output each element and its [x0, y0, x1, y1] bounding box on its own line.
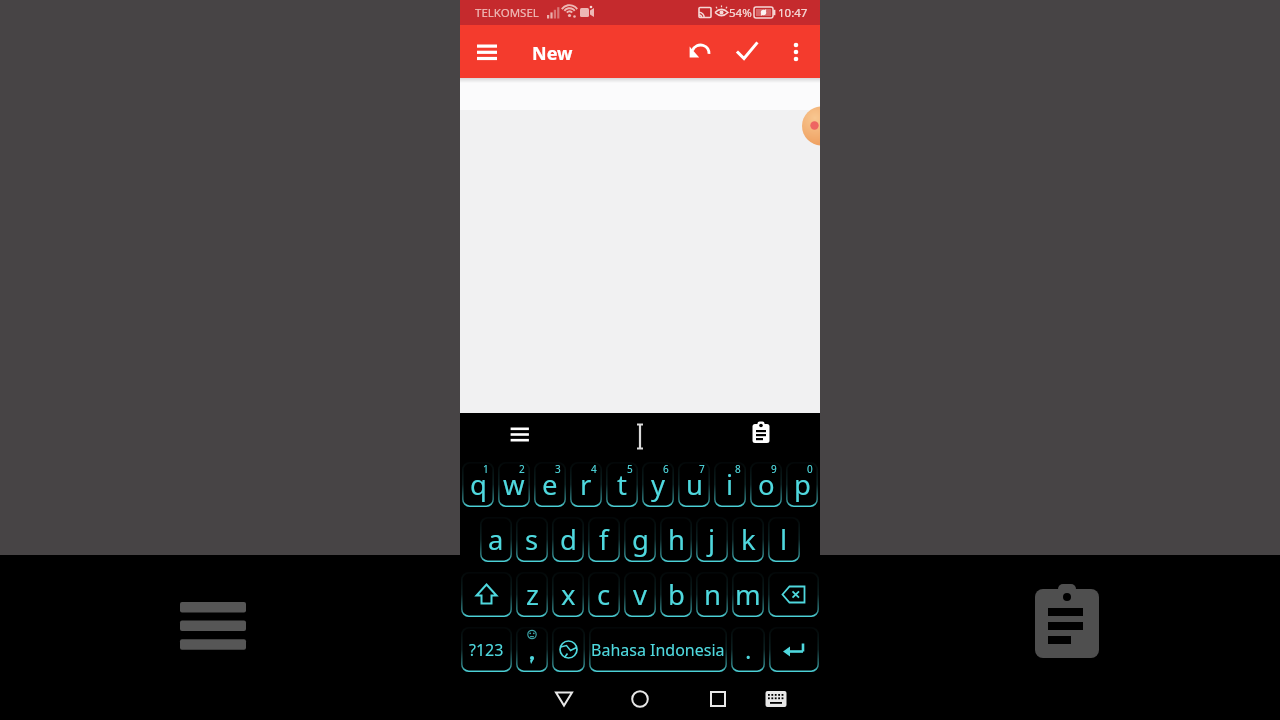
button[interactable]: w: [498, 462, 530, 507]
button[interactable]: j: [696, 517, 728, 562]
button[interactable]: [776, 32, 816, 72]
staticText: c: [597, 576, 611, 613]
staticText: 5: [627, 462, 633, 476]
button[interactable]: t: [606, 462, 638, 507]
staticText: o: [758, 466, 775, 503]
button[interactable]: [741, 415, 781, 455]
staticText: k: [741, 521, 756, 558]
button[interactable]: v: [624, 572, 656, 617]
button[interactable]: r: [570, 462, 602, 507]
staticText: l: [780, 521, 788, 558]
staticText: f: [599, 521, 609, 558]
button[interactable]: f: [588, 517, 620, 562]
staticText: i: [726, 466, 734, 503]
button[interactable]: d: [552, 517, 584, 562]
staticText: j: [708, 521, 716, 558]
staticText: 3: [555, 462, 561, 476]
staticText: New: [532, 41, 573, 66]
button[interactable]: [727, 32, 767, 72]
staticText: 1: [483, 462, 489, 476]
button[interactable]: s: [516, 517, 548, 562]
staticText: s: [525, 521, 539, 558]
staticText: .: [745, 633, 752, 666]
staticText: ?123: [469, 639, 504, 661]
button[interactable]: o: [750, 462, 782, 507]
staticText: q: [470, 466, 487, 503]
button[interactable]: p: [786, 462, 818, 507]
button[interactable]: [769, 627, 819, 672]
staticText: a: [488, 521, 504, 558]
button[interactable]: z: [516, 572, 548, 617]
button[interactable]: [460, 110, 820, 413]
button[interactable]: q: [462, 462, 494, 507]
button[interactable]: c: [588, 572, 620, 617]
staticText: p: [794, 466, 811, 503]
button[interactable]: [620, 678, 660, 718]
button[interactable]: h: [660, 517, 692, 562]
button[interactable]: n: [696, 572, 728, 617]
button[interactable]: [768, 572, 819, 617]
staticText: 4: [591, 462, 597, 476]
staticText: u: [686, 466, 703, 503]
staticText: n: [704, 576, 721, 613]
button[interactable]: [698, 678, 738, 718]
button[interactable]: x: [552, 572, 584, 617]
staticText: t: [617, 466, 627, 503]
button[interactable]: .: [731, 627, 765, 672]
button[interactable]: ?123: [461, 627, 512, 672]
staticText: v: [633, 576, 647, 613]
button[interactable]: e: [534, 462, 566, 507]
button[interactable]: l: [768, 517, 800, 562]
staticText: g: [632, 521, 649, 558]
staticText: 7: [699, 462, 705, 476]
staticText: r: [580, 466, 592, 503]
button[interactable]: [544, 678, 584, 718]
button[interactable]: g: [624, 517, 656, 562]
button[interactable]: [460, 78, 820, 110]
staticText: 6: [663, 462, 669, 476]
button[interactable]: [679, 32, 719, 72]
button[interactable]: Bahasa Indonesia: [589, 627, 727, 672]
button[interactable]: b: [660, 572, 692, 617]
button[interactable]: a: [480, 517, 512, 562]
staticText: 54%: [729, 5, 752, 21]
button[interactable]: [794, 99, 820, 153]
staticText: e: [542, 466, 558, 503]
button[interactable]: [461, 572, 512, 617]
staticText: b: [668, 576, 685, 613]
staticText: TELKOMSEL: [475, 5, 539, 21]
staticText: x: [561, 576, 576, 613]
button[interactable]: [500, 415, 540, 455]
button[interactable]: i: [714, 462, 746, 507]
staticText: m: [735, 576, 761, 613]
button[interactable]: k: [732, 517, 764, 562]
staticText: 2: [519, 462, 525, 476]
staticText: w: [503, 466, 525, 503]
staticText: 10:47: [778, 5, 808, 21]
staticText: h: [668, 521, 685, 558]
button[interactable]: m: [732, 572, 764, 617]
button[interactable]: [756, 678, 796, 718]
button[interactable]: [468, 41, 506, 65]
button[interactable]: u: [678, 462, 710, 507]
button[interactable]: [516, 627, 548, 672]
staticText: Bahasa Indonesia: [591, 639, 725, 661]
staticText: 9: [771, 462, 777, 476]
staticText: y: [651, 466, 666, 503]
staticText: 8: [735, 462, 741, 476]
button[interactable]: y: [642, 462, 674, 507]
staticText: 0: [807, 462, 813, 476]
staticText: z: [526, 576, 539, 613]
button[interactable]: [620, 415, 660, 455]
staticText: d: [560, 521, 577, 558]
button[interactable]: [552, 627, 585, 672]
